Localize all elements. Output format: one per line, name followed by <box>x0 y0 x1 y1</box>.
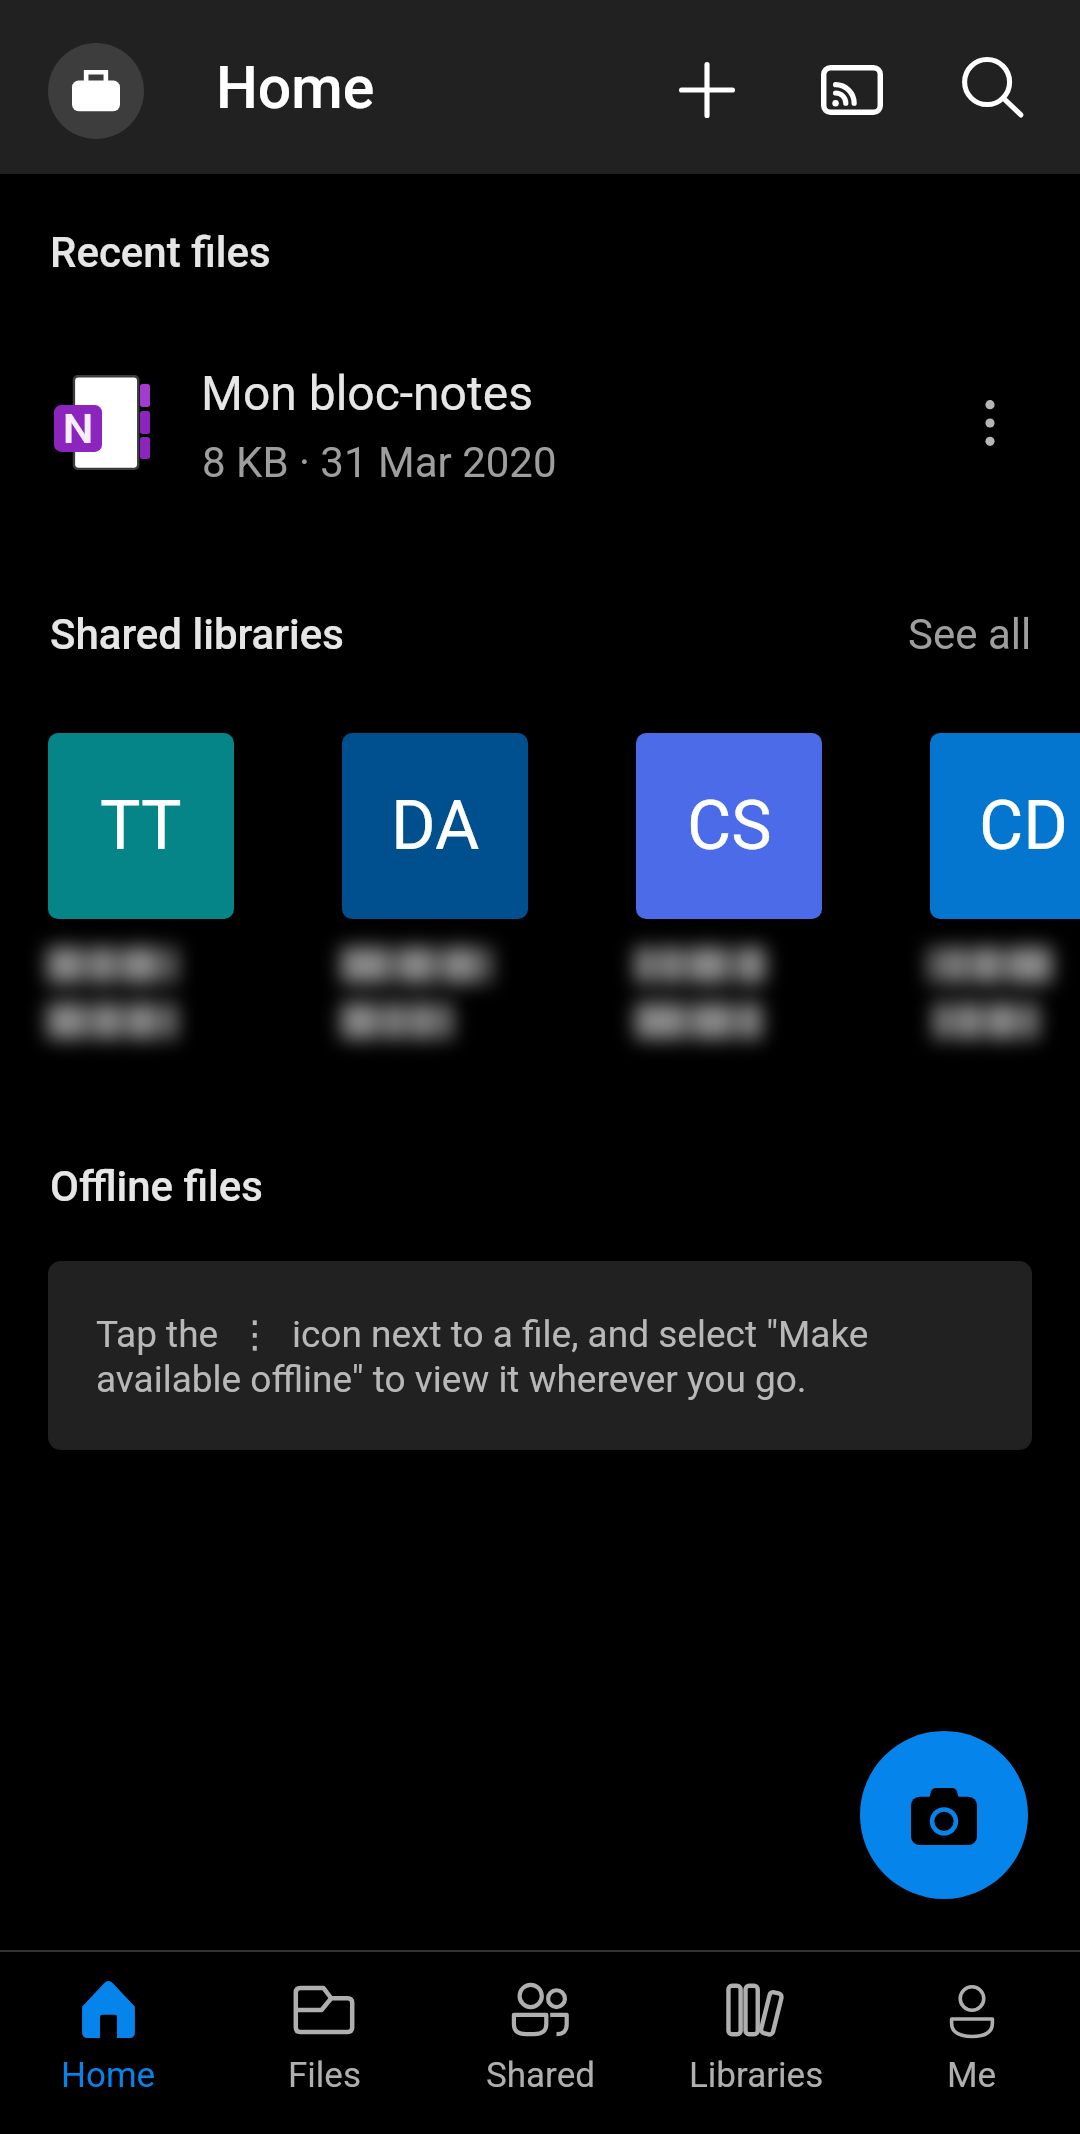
staticText: Me <box>947 2055 997 2096</box>
button[interactable]: Tap the ⋮ icon next to a file, and selec… <box>48 1261 1032 1450</box>
button[interactable]: Shared <box>432 1952 648 2134</box>
button[interactable]: Libraries <box>648 1952 864 2134</box>
button[interactable]: CD <box>930 733 1080 1061</box>
button[interactable]: More options <box>940 373 1040 473</box>
staticText: See all <box>908 610 1032 659</box>
staticText: DA <box>391 786 480 866</box>
staticText: 8 KB · 31 Mar 2020 <box>202 438 557 487</box>
staticText: Offline files <box>50 1162 263 1211</box>
staticText: CD <box>979 786 1068 866</box>
button[interactable]: Me <box>864 1952 1080 2134</box>
button[interactable]: See all <box>882 602 1058 667</box>
button[interactable]: Mon bloc-notes <box>0 340 1080 508</box>
button[interactable]: Cast <box>780 18 924 162</box>
staticText: Libraries <box>689 2055 824 2096</box>
button[interactable]: Search <box>922 17 1066 161</box>
staticText: Tap the ⋮ icon next to a file, and selec… <box>96 1313 896 1401</box>
button[interactable]: Account <box>48 43 144 139</box>
staticText: Shared <box>486 2055 595 2096</box>
staticText: TT <box>100 786 182 866</box>
staticText: Home <box>61 2055 156 2096</box>
staticText: CS <box>687 786 772 866</box>
button[interactable]: DA <box>342 733 528 1061</box>
button[interactable]: Files <box>216 1952 432 2134</box>
button[interactable]: Home <box>0 1952 216 2134</box>
button[interactable]: TT <box>48 733 234 1061</box>
staticText: Home <box>216 53 375 122</box>
staticText: Shared libraries <box>50 610 344 659</box>
button[interactable]: Scan <box>860 1731 1028 1899</box>
staticText: Recent files <box>50 228 271 277</box>
staticText: Mon bloc-notes <box>201 365 533 421</box>
staticText: Files <box>288 2055 361 2096</box>
button[interactable]: Add <box>635 18 779 162</box>
button[interactable]: CS <box>636 733 822 1061</box>
